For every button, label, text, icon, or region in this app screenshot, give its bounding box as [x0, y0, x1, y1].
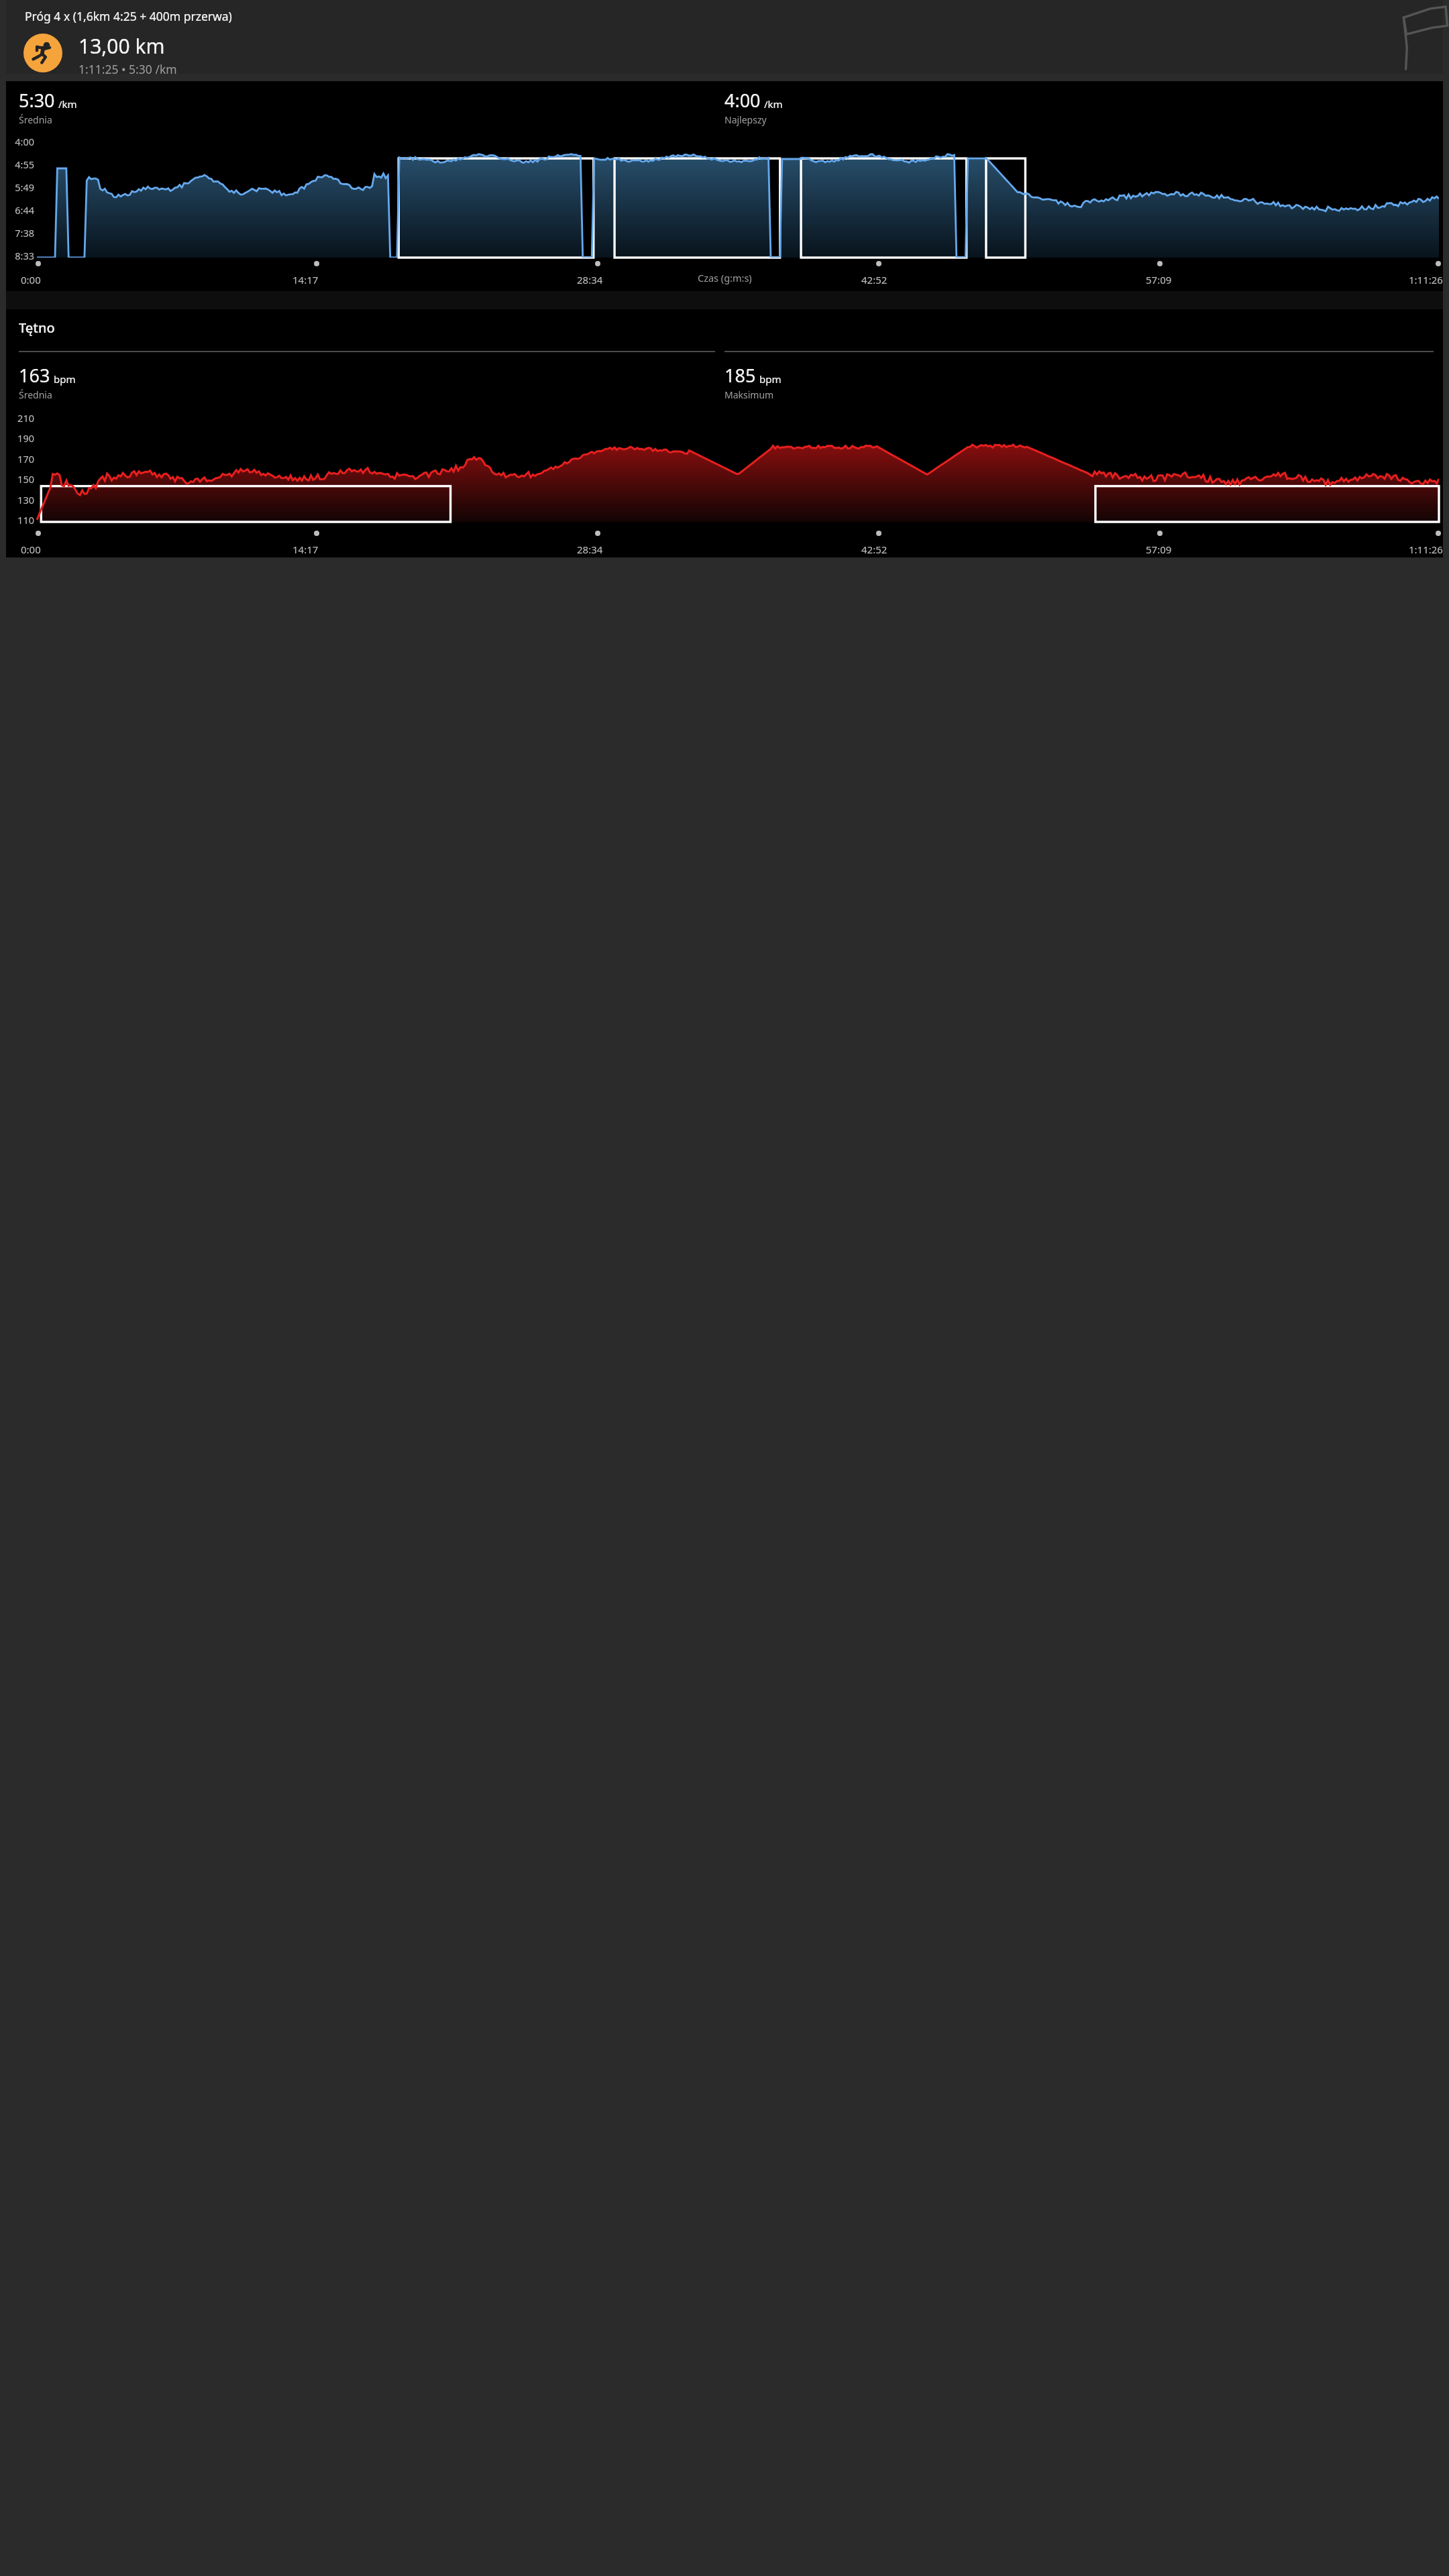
- button[interactable]: Tętno: [6, 309, 1443, 557]
- staticText: bpm: [54, 372, 76, 386]
- staticText: 42:52: [861, 543, 888, 556]
- staticText: 5:30: [19, 88, 55, 113]
- staticText: Próg 4 x (1,6km 4:25 + 400m przerwa): [25, 8, 232, 24]
- staticText: 7:38: [6, 226, 34, 239]
- staticText: 163: [19, 363, 50, 388]
- staticText: 14:17: [292, 543, 319, 556]
- other: Goal: [1388, 5, 1443, 71]
- staticText: /km: [58, 97, 77, 111]
- staticText: 42:52: [861, 273, 888, 286]
- staticText: 4:55: [6, 158, 34, 171]
- staticText: 150: [6, 472, 34, 486]
- staticText: 130: [6, 493, 34, 506]
- staticText: Średnia: [19, 113, 52, 126]
- staticText: 210: [6, 411, 34, 425]
- staticText: 57:09: [1146, 273, 1172, 286]
- staticText: 13,00 km: [78, 32, 165, 60]
- staticText: 57:09: [1146, 543, 1172, 556]
- staticText: Średnia: [19, 388, 52, 401]
- staticText: 170: [6, 452, 34, 466]
- staticText: Czas (g:m:s): [698, 271, 752, 284]
- staticText: /km: [764, 97, 783, 111]
- staticText: 5:49: [6, 180, 34, 194]
- staticText: 4:00: [6, 135, 34, 148]
- staticText: 0:00: [21, 273, 41, 286]
- button[interactable]: Goal: [6, 0, 1443, 74]
- staticText: Tętno: [19, 319, 55, 337]
- button[interactable]: 5:30: [6, 81, 1443, 291]
- staticText: 110: [6, 513, 34, 527]
- staticText: Najlepszy: [724, 113, 767, 126]
- staticText: 6:44: [6, 203, 34, 217]
- staticText: 28:34: [577, 543, 603, 556]
- staticText: 1:11:26: [1409, 273, 1443, 286]
- staticText: 0:00: [21, 543, 41, 556]
- staticText: 1:11:26: [1409, 543, 1443, 556]
- staticText: 190: [6, 431, 34, 445]
- staticText: 185: [724, 363, 756, 388]
- staticText: Maksimum: [724, 388, 774, 401]
- staticText: bpm: [759, 372, 782, 386]
- staticText: 8:33: [6, 249, 34, 262]
- staticText: 4:00: [724, 88, 761, 113]
- staticText: 28:34: [577, 273, 603, 286]
- staticText: 1:11:25 • 5:30 /km: [78, 61, 177, 74]
- staticText: 14:17: [292, 273, 319, 286]
